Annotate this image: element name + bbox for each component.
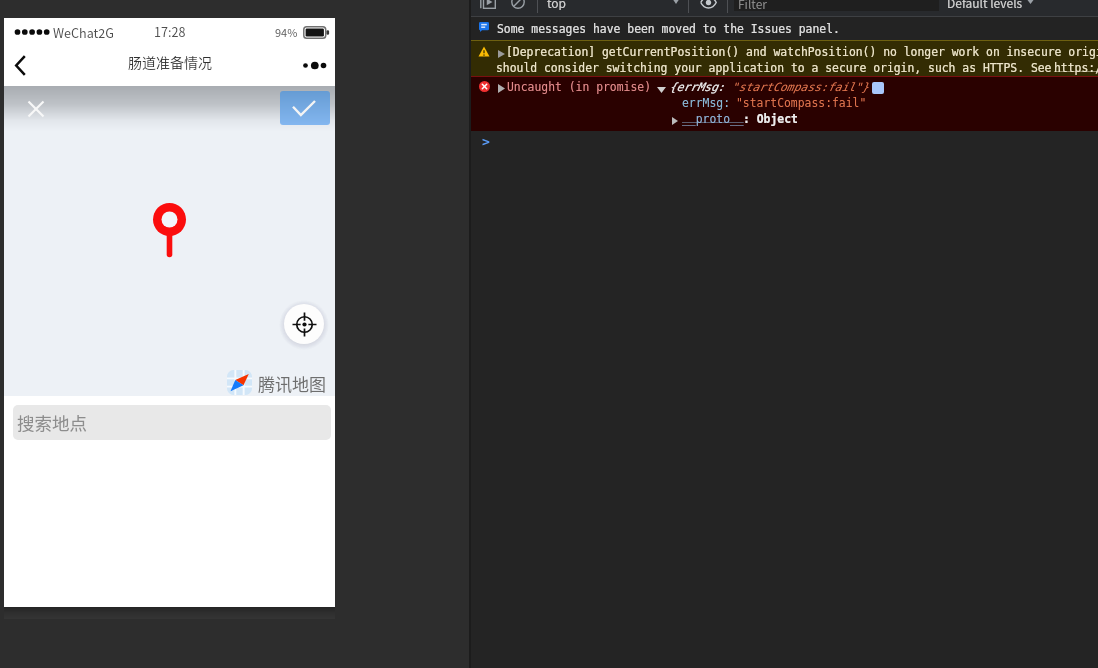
staticText: WeChat2G: [53, 23, 115, 41]
staticText: Default levels: [947, 0, 1023, 10]
button[interactable]: Create live expression: [698, 0, 718, 10]
staticText: Uncaught (in promise): [507, 80, 658, 93]
staticText: https://go: [1054, 61, 1098, 74]
staticText: "startCompass:fail": [736, 96, 867, 109]
staticText: errMsg:: [682, 96, 737, 109]
staticText: 搜索地点: [17, 410, 87, 435]
staticText: "startCompass:fail"}: [732, 80, 870, 93]
button[interactable]: 搜索地点: [13, 405, 331, 440]
button[interactable]: Create live expression: [478, 0, 498, 10]
staticText: 94%: [275, 24, 298, 40]
staticText: 腾讯地图: [258, 371, 326, 396]
button[interactable]: Clear console: [508, 0, 528, 10]
button[interactable]: Default levels: [947, 0, 1023, 10]
button[interactable]: Confirm: [280, 91, 330, 125]
button[interactable]: Filter: [734, 0, 939, 11]
button[interactable]: Close: [20, 93, 52, 125]
staticText: should consider switching your applicati…: [496, 61, 1059, 74]
button[interactable]: top: [541, 0, 573, 10]
staticText: [Deprecation] getCurrentPosition() and w…: [506, 45, 1098, 58]
button[interactable]: More options: [291, 46, 335, 86]
staticText: : Object: [743, 112, 798, 125]
staticText: Some messages have been moved to the Iss…: [497, 22, 840, 35]
staticText: __proto__: [682, 112, 744, 125]
staticText: 肠道准备情况: [128, 52, 212, 72]
button[interactable]: My location: [284, 304, 324, 344]
button[interactable]: Back: [5, 46, 35, 86]
staticText: >: [482, 134, 490, 149]
staticText: 17:28: [154, 22, 186, 40]
staticText: {errMsg:: [670, 80, 732, 93]
staticText: Filter: [738, 0, 767, 11]
staticText: top: [547, 0, 567, 10]
